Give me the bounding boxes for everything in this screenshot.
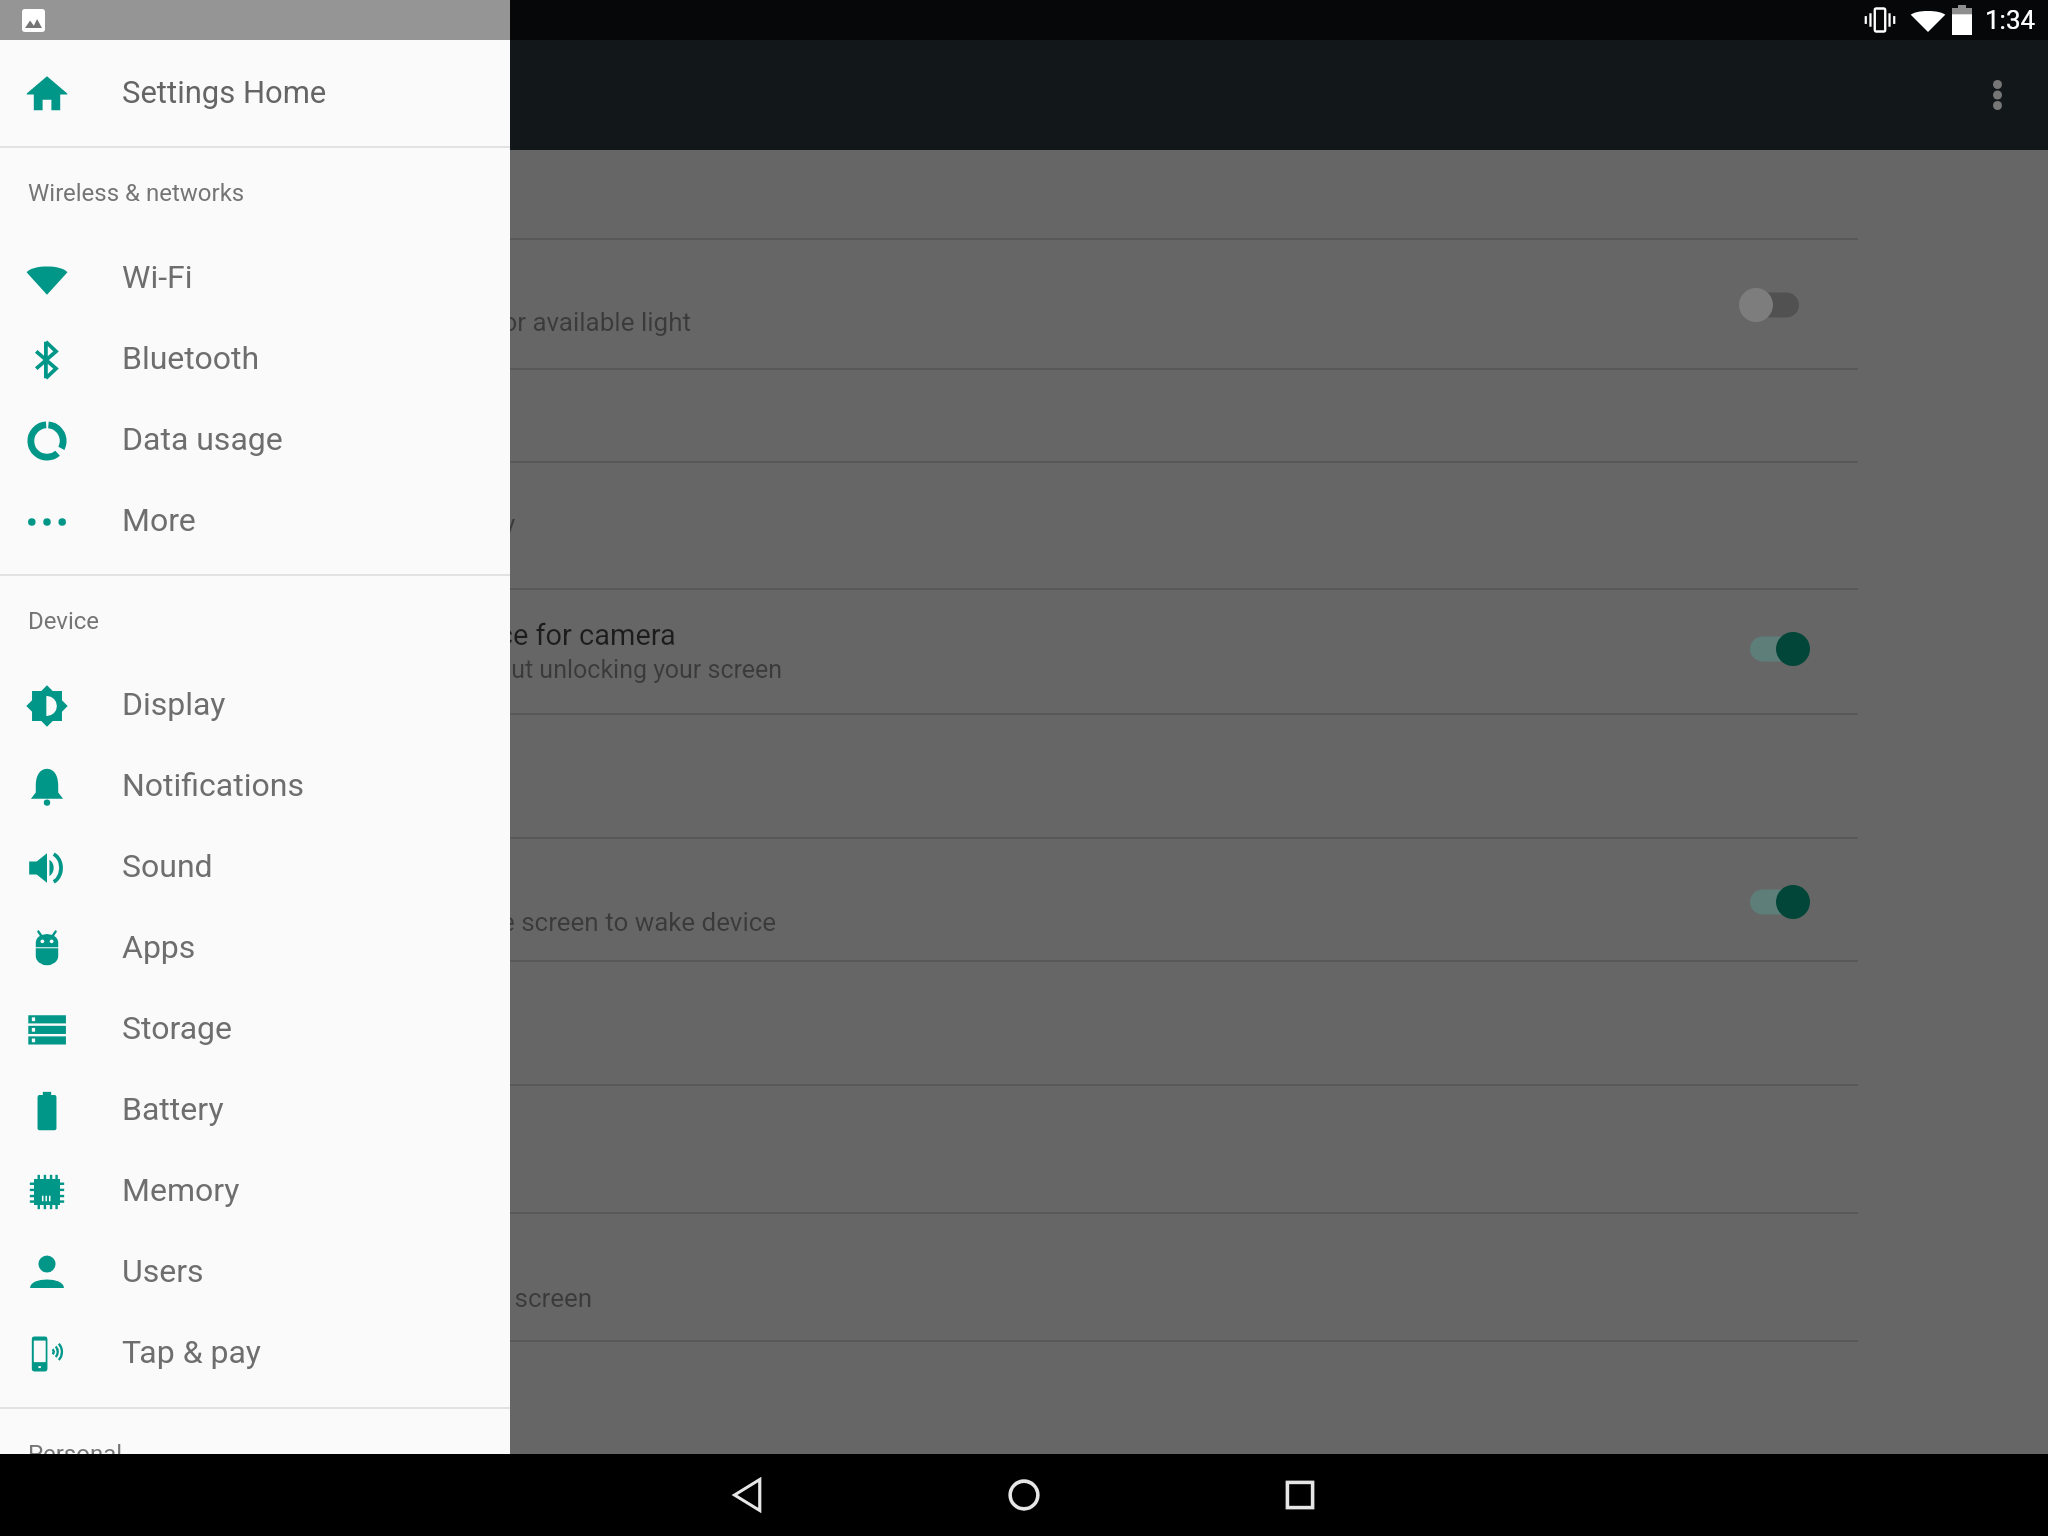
staticText: Bluetooth bbox=[122, 339, 260, 377]
staticText: Apps bbox=[122, 928, 196, 966]
button[interactable]: Adapt display for available light bbox=[1739, 287, 1799, 323]
staticText: Notifications bbox=[122, 766, 304, 804]
staticText: Adapt display for available light bbox=[330, 307, 691, 337]
button[interactable]: Memory bbox=[0, 1151, 510, 1232]
staticText: Tap & pay bbox=[122, 1333, 261, 1371]
button[interactable]: Setting row 4 bbox=[0, 588, 1858, 713]
button[interactable]: Setting row 9 bbox=[0, 1212, 1858, 1340]
staticText: Ambient display bbox=[330, 509, 516, 539]
button[interactable]: Setting row 5 bbox=[0, 713, 1858, 837]
staticText: Users bbox=[122, 1252, 204, 1290]
button[interactable]: Setting row 8 bbox=[0, 1084, 1858, 1212]
staticText: Device bbox=[28, 607, 100, 635]
staticText: Quickly open camera without unlocking yo… bbox=[212, 655, 783, 684]
staticText: Sound bbox=[122, 847, 213, 885]
staticText: Wireless & networks bbox=[28, 179, 245, 207]
button[interactable]: Apps bbox=[0, 908, 510, 989]
staticText: Display bbox=[122, 685, 226, 723]
button[interactable]: Setting row 1 bbox=[0, 238, 1858, 368]
staticText: Storage bbox=[122, 1009, 232, 1047]
staticText: Sleep after 2 minutes of inactivity on s… bbox=[87, 1283, 593, 1313]
button[interactable]: Setting row 6 bbox=[0, 837, 1858, 960]
button[interactable]: Recent apps bbox=[1244, 1454, 1356, 1536]
staticText: Battery bbox=[122, 1090, 224, 1128]
button[interactable]: Tap & pay bbox=[0, 1313, 510, 1394]
button[interactable]: Bluetooth bbox=[0, 319, 510, 400]
button[interactable]: More bbox=[0, 481, 510, 562]
staticText: More bbox=[122, 501, 196, 539]
button[interactable]: Storage bbox=[0, 989, 510, 1070]
button[interactable]: Lift or double tap the screen to wake de… bbox=[1750, 884, 1810, 920]
staticText: 1:34 bbox=[1985, 5, 2036, 35]
button[interactable]: Setting row 2 bbox=[0, 368, 1858, 461]
button[interactable]: More options bbox=[1958, 56, 2036, 134]
button[interactable]: Home bbox=[968, 1454, 1080, 1536]
button[interactable]: Notifications bbox=[0, 746, 510, 827]
button[interactable]: Settings Home bbox=[0, 40, 510, 146]
button[interactable]: Battery bbox=[0, 1070, 510, 1151]
staticText: Wi-Fi bbox=[122, 258, 193, 296]
button[interactable]: Sound bbox=[0, 827, 510, 908]
button[interactable]: Users bbox=[0, 1232, 510, 1313]
button[interactable]: Display bbox=[0, 665, 510, 746]
staticText: Press power twice for camera bbox=[292, 618, 676, 652]
button[interactable]: Setting row 3 bbox=[0, 461, 1858, 588]
button[interactable]: Data usage bbox=[0, 400, 510, 481]
staticText: Data usage bbox=[122, 420, 283, 458]
button[interactable]: Wi-Fi bbox=[0, 238, 510, 319]
staticText: Personal bbox=[28, 1440, 123, 1468]
button[interactable]: Setting row 7 bbox=[0, 960, 1858, 1084]
staticText: Settings Home bbox=[122, 74, 327, 110]
staticText: Memory bbox=[122, 1171, 240, 1209]
button[interactable]: Setting row 10 bbox=[0, 1340, 1858, 1454]
button[interactable]: Press power twice for camera bbox=[1750, 631, 1810, 667]
staticText: Lift or double tap the screen to wake de… bbox=[275, 907, 777, 937]
button[interactable]: Back bbox=[692, 1454, 804, 1536]
